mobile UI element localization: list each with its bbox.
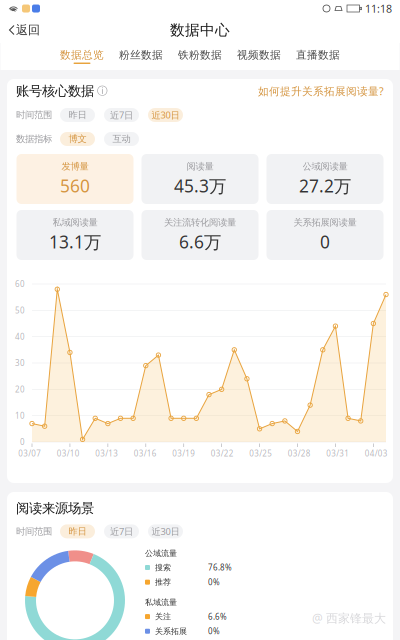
staticText: 数据指标 (16, 133, 52, 145)
button[interactable]: 如何提升关系拓展阅读量? (258, 84, 384, 98)
staticText: 03/19 (172, 448, 195, 459)
button[interactable]: 近30日 (148, 108, 183, 122)
staticText: 03/13 (95, 448, 118, 459)
staticText: 30 (15, 358, 25, 368)
staticText: 阅读来源场景 (16, 500, 94, 516)
button[interactable]: 发博量 (16, 154, 133, 204)
button[interactable]: 近7日 (104, 524, 139, 538)
staticText: 发博量 (61, 161, 88, 172)
staticText: 27.2万 (299, 174, 351, 197)
staticText: 近7日 (110, 109, 133, 121)
staticText: 03/25 (249, 448, 272, 459)
staticText: 关注 (155, 612, 171, 621)
staticText: 76.8% (208, 562, 232, 573)
staticText: 20 (15, 384, 25, 395)
staticText: 0 (320, 230, 330, 253)
button[interactable]: 粉丝数据 (111, 43, 170, 70)
staticText: 昨日 (68, 526, 86, 537)
staticText: 0% (208, 626, 220, 636)
staticText: 视频数据 (237, 48, 281, 61)
staticText: @ 西家锋最大 (312, 610, 386, 626)
button[interactable]: 互动 (104, 132, 139, 146)
button[interactable]: 博文 (60, 132, 95, 146)
button[interactable]: 近7日 (104, 108, 139, 122)
staticText: 博文 (68, 133, 86, 145)
staticText: 11:18 (365, 1, 392, 16)
staticText: 公域阅读量 (302, 161, 347, 172)
staticText: 如何提升关系拓展阅读量? (258, 84, 384, 98)
staticText: 私域流量 (145, 597, 177, 607)
button[interactable]: 直播数据 (288, 43, 347, 70)
staticText: 数据总览 (60, 48, 104, 61)
staticText: 时间范围 (16, 109, 52, 121)
button[interactable]: 近30日 (148, 524, 183, 538)
button[interactable]: 昨日 (60, 524, 95, 538)
button[interactable]: 昨日 (60, 108, 95, 122)
staticText: 数据中心 (170, 21, 230, 39)
staticText: 关系拓展阅读量 (293, 217, 356, 228)
staticText: 近30日 (151, 525, 179, 538)
staticText: 粉丝数据 (119, 48, 163, 61)
staticText: 6.6% (208, 611, 227, 622)
staticText: 搜索 (155, 563, 171, 572)
staticText: 关系拓展 (155, 626, 187, 636)
staticText: 私域阅读量 (52, 217, 97, 228)
staticText: 0% (208, 577, 220, 587)
staticText: ⓘ (94, 84, 108, 97)
staticText: 03/07 (18, 448, 41, 459)
staticText: 返回 (16, 23, 40, 37)
staticText: 推荐 (155, 577, 171, 587)
staticText: 昨日 (68, 109, 86, 121)
button[interactable]: 公域阅读量 (266, 154, 383, 204)
staticText: 03/31 (326, 448, 349, 459)
staticText: 近7日 (110, 525, 133, 538)
button[interactable]: 返回 (0, 18, 49, 42)
staticText: 阅读量 (186, 161, 213, 172)
button[interactable]: 数据总览 (52, 43, 111, 70)
staticText: 10 (15, 410, 25, 421)
button[interactable]: 阅读量 (141, 154, 258, 204)
staticText: 公域流量 (145, 548, 177, 558)
button[interactable]: 视频数据 (229, 43, 288, 70)
staticText: 40 (15, 331, 25, 342)
button[interactable]: 私域阅读量 (16, 210, 133, 260)
staticText: 03/22 (211, 448, 234, 459)
staticText: 45.3万 (174, 174, 226, 197)
staticText: 0 (20, 437, 25, 447)
staticText: 13.1万 (49, 230, 101, 253)
button[interactable]: 铁粉数据 (170, 43, 229, 70)
staticText: 关注流转化阅读量 (164, 217, 236, 228)
staticText: 60 (15, 279, 25, 289)
button[interactable]: 关注流转化阅读量 (141, 210, 258, 260)
staticText: 03/28 (288, 448, 311, 459)
staticText: 04/03 (365, 448, 388, 459)
staticText: 6.6万 (179, 230, 221, 253)
staticText: 账号核心数据 (16, 83, 94, 99)
staticText: 50 (15, 305, 25, 316)
staticText: 铁粉数据 (178, 48, 222, 61)
staticText: 03/16 (134, 448, 157, 459)
staticText: 时间范围 (16, 526, 52, 537)
button[interactable]: 关系拓展阅读量 (266, 210, 383, 260)
staticText: 近30日 (151, 109, 179, 121)
staticText: 560 (60, 174, 90, 197)
staticText: 互动 (112, 133, 130, 145)
staticText: 直播数据 (296, 48, 340, 61)
staticText: 03/10 (57, 448, 80, 459)
